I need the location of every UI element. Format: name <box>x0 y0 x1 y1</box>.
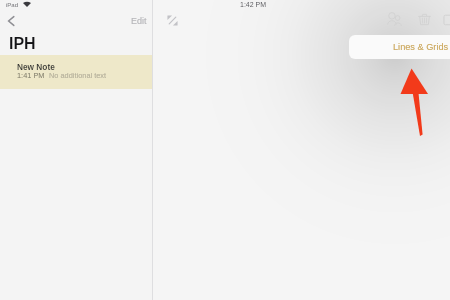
button[interactable]: Lines & Grids <box>349 35 450 59</box>
button[interactable]: Expand <box>163 11 181 29</box>
staticText: IPH <box>9 35 36 53</box>
staticText: New Note <box>17 62 55 71</box>
button[interactable]: Back <box>3 13 19 29</box>
staticText: 1:42 PM <box>240 1 267 9</box>
button[interactable]: Share <box>382 8 406 32</box>
button[interactable]: Edit <box>127 13 148 28</box>
staticText: iPad <box>6 2 19 9</box>
staticText: Lines & Grids <box>393 42 449 52</box>
button[interactable]: Compose <box>437 8 450 32</box>
button[interactable]: New Note <box>0 55 152 89</box>
staticText: Edit <box>131 16 147 26</box>
button[interactable]: Delete <box>412 8 436 32</box>
staticText: 1:41 PM <box>17 71 45 79</box>
staticText: No additional text <box>49 71 107 79</box>
